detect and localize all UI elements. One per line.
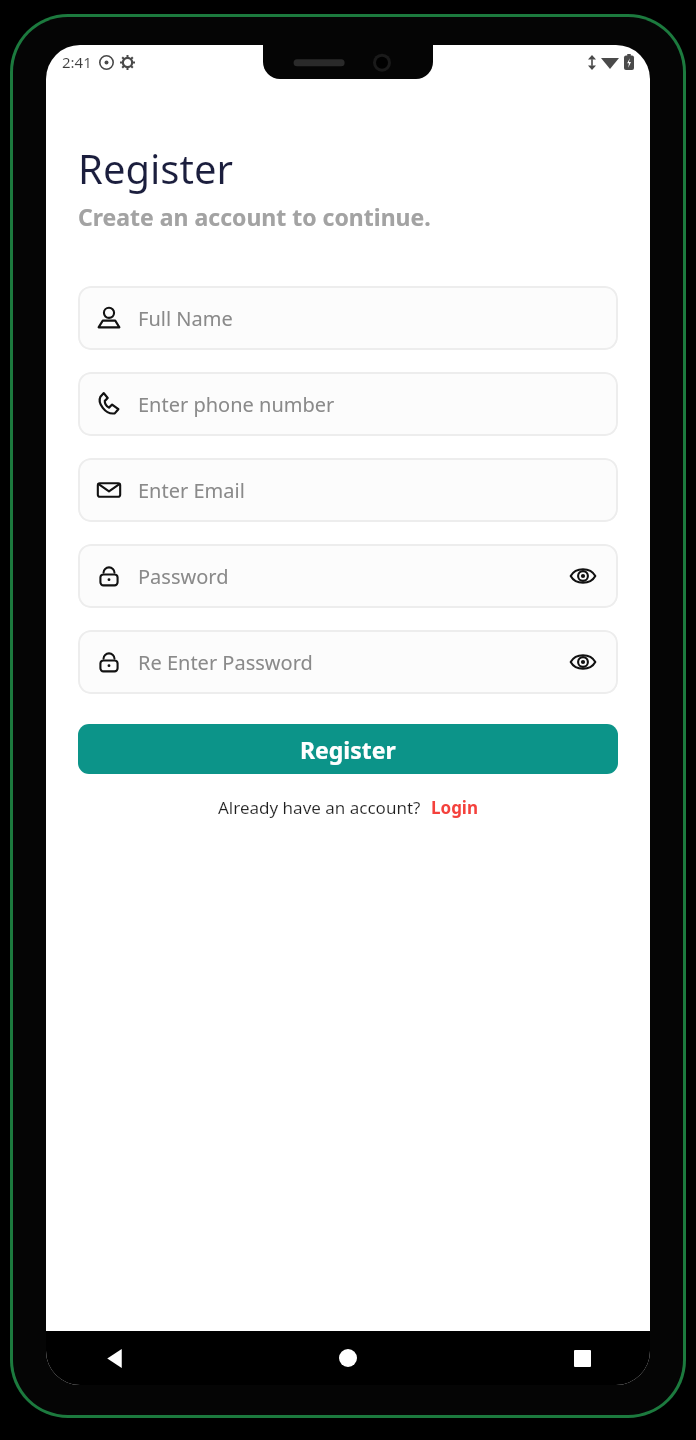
button[interactable]: Full Name [78, 286, 618, 350]
staticText: Password [138, 563, 229, 590]
staticText: Register [300, 734, 396, 765]
staticText: Register [78, 141, 234, 195]
button[interactable]: Recent apps [562, 1338, 602, 1378]
button[interactable]: Re Enter Password [78, 630, 618, 694]
button[interactable]: Password [78, 544, 618, 608]
button[interactable]: Show password [566, 645, 600, 679]
staticText: Full Name [138, 305, 233, 332]
button[interactable]: Enter Email [78, 458, 618, 522]
staticText: Enter Email [138, 477, 245, 504]
button[interactable]: Back [94, 1338, 134, 1378]
button[interactable]: Show password [566, 559, 600, 593]
staticText: Create an account to continue. [78, 201, 431, 232]
staticText: Already have an account? [218, 796, 421, 819]
staticText: 2:41 [62, 52, 92, 72]
staticText: Enter phone number [138, 391, 335, 418]
staticText: Login [431, 796, 479, 819]
button[interactable]: Login [431, 796, 479, 819]
staticText: Re Enter Password [138, 649, 313, 676]
button[interactable]: Home [328, 1338, 368, 1378]
button[interactable]: Enter phone number [78, 372, 618, 436]
button[interactable]: Register [78, 724, 618, 774]
